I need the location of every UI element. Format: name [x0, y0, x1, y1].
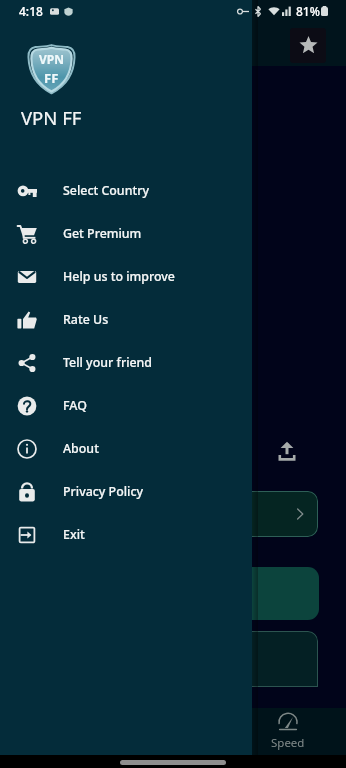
- button[interactable]: FAQ: [0, 384, 252, 427]
- staticText: Privacy Policy: [63, 483, 144, 500]
- button[interactable]: Exit: [0, 513, 252, 556]
- staticText: Tell your friend: [63, 354, 153, 371]
- staticText: Select Country: [63, 182, 149, 199]
- staticText: 4:18: [19, 3, 43, 19]
- staticText: About: [63, 440, 99, 457]
- button[interactable]: [240, 631, 318, 687]
- staticText: Rate Us: [63, 311, 109, 328]
- button[interactable]: Speed: [266, 713, 310, 751]
- staticText: VPN: [39, 51, 65, 67]
- staticText: Exit: [63, 526, 85, 543]
- staticText: Help us to improve: [63, 268, 175, 285]
- button[interactable]: About: [0, 427, 252, 470]
- staticText: FAQ: [63, 397, 87, 414]
- staticText: FF: [44, 69, 59, 87]
- staticText: VPN FF: [21, 105, 82, 130]
- staticText: Get Premium: [63, 225, 142, 242]
- staticText: 81%: [296, 3, 320, 19]
- button[interactable]: Favourite: [290, 28, 326, 63]
- button[interactable]: [240, 491, 318, 537]
- button[interactable]: Get Premium: [0, 212, 252, 255]
- button[interactable]: Help us to improve: [0, 255, 252, 298]
- button[interactable]: Tell your friend: [0, 341, 252, 384]
- button[interactable]: Select Country: [0, 169, 252, 212]
- button[interactable]: Privacy Policy: [0, 470, 252, 513]
- staticText: Speed: [271, 735, 305, 751]
- button[interactable]: Rate Us: [0, 298, 252, 341]
- button[interactable]: [240, 567, 319, 620]
